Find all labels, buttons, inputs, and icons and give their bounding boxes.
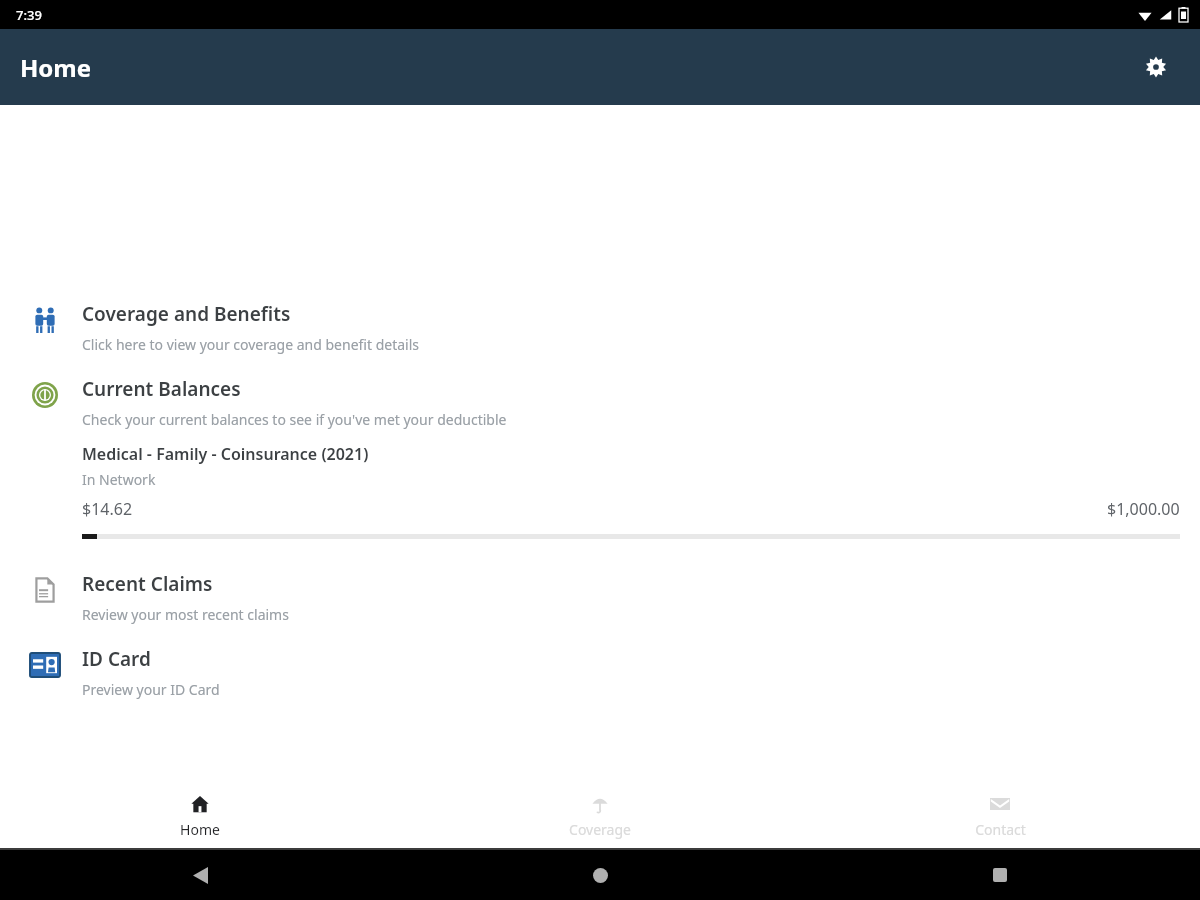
button[interactable]: Current Balances: [0, 376, 1200, 539]
staticText: Current Balances: [82, 376, 241, 402]
button[interactable]: ID Card: [0, 646, 1200, 699]
button[interactable]: Coverage: [400, 784, 800, 848]
staticText: $14.62: [82, 498, 133, 520]
button[interactable]: Settings: [1136, 47, 1176, 87]
staticText: Preview your ID Card: [82, 680, 220, 699]
button[interactable]: Recent apps: [983, 858, 1017, 892]
staticText: Coverage and Benefits: [82, 301, 291, 327]
staticText: Home: [20, 51, 92, 84]
staticText: Recent Claims: [82, 571, 213, 597]
staticText: Review your most recent claims: [82, 605, 289, 624]
button[interactable]: Back: [183, 858, 217, 892]
staticText: 7:39: [16, 6, 42, 24]
button[interactable]: Home: [583, 858, 617, 892]
staticText: Contact: [975, 820, 1026, 839]
staticText: Medical - Family - Coinsurance (2021): [82, 443, 369, 465]
staticText: $1,000.00: [1107, 498, 1180, 520]
staticText: ID Card: [82, 646, 151, 672]
staticText: Coverage: [569, 820, 631, 839]
staticText: Check your current balances to see if yo…: [82, 410, 507, 429]
button[interactable]: Coverage and Benefits: [0, 301, 1200, 354]
staticText: In Network: [82, 470, 156, 489]
staticText: Click here to view your coverage and ben…: [82, 335, 420, 354]
staticText: Home: [180, 820, 220, 839]
button[interactable]: Recent Claims: [0, 571, 1200, 624]
button[interactable]: Contact: [800, 784, 1200, 848]
button[interactable]: Home: [0, 784, 400, 848]
